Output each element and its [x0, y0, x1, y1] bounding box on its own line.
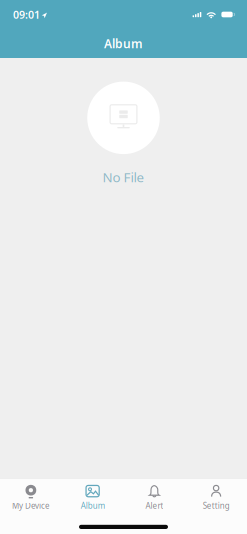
staticText: My Device [12, 500, 50, 511]
staticText: Album [81, 500, 105, 511]
button[interactable]: Setting [185, 478, 247, 510]
staticText: Alert [145, 500, 163, 511]
staticText: Setting [203, 500, 230, 511]
staticText: No File [102, 168, 144, 186]
button[interactable]: Alert [123, 478, 185, 510]
staticText: Album [104, 35, 143, 51]
button[interactable]: My Device [0, 478, 62, 510]
button[interactable]: Album [62, 478, 124, 510]
staticText: 09:01 [13, 7, 40, 22]
